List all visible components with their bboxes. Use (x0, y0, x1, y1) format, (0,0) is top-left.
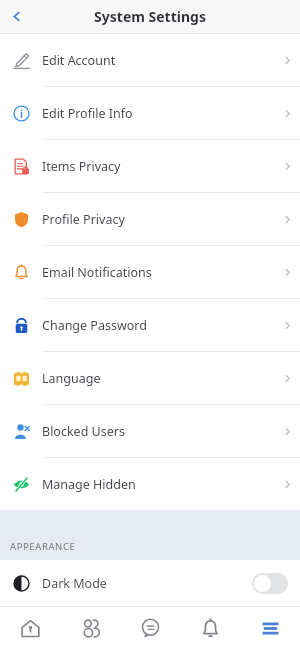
staticText: Blocked Users (42, 423, 274, 440)
button[interactable]: Home (0, 607, 60, 649)
button[interactable]: Menu (240, 607, 300, 649)
staticText: Email Notifications (42, 264, 274, 281)
staticText: Items Privacy (42, 158, 274, 175)
staticText: Dark Mode (42, 575, 252, 592)
staticText: APPEARANCE (10, 540, 76, 553)
button[interactable]: Messages (120, 607, 180, 649)
staticText: System Settings (94, 7, 206, 26)
button[interactable]: Dark Mode (0, 560, 300, 606)
button[interactable]: Edit Account (0, 34, 300, 87)
button[interactable]: Change Password (0, 299, 300, 352)
button[interactable]: Profile Privacy (0, 193, 300, 246)
staticText: Manage Hidden (42, 476, 274, 493)
button[interactable]: Items Privacy (0, 140, 300, 193)
button[interactable]: Back (0, 0, 33, 33)
button[interactable]: People (60, 607, 120, 649)
staticText: Edit Profile Info (42, 105, 274, 122)
button[interactable]: Email Notifications (0, 246, 300, 299)
button[interactable]: Language (0, 352, 300, 405)
staticText: Edit Account (42, 52, 274, 69)
button[interactable]: Blocked Users (0, 405, 300, 458)
staticText: Change Password (42, 317, 274, 334)
button[interactable]: Manage Hidden (0, 458, 300, 510)
button[interactable]: Notifications (180, 607, 240, 649)
staticText: Profile Privacy (42, 211, 274, 228)
button[interactable]: Edit Profile Info (0, 87, 300, 140)
staticText: Language (42, 370, 274, 387)
